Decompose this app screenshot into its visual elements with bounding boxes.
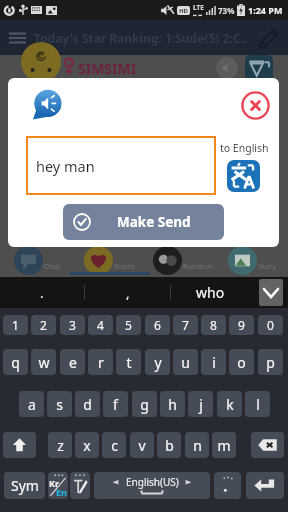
- staticText: a: [28, 395, 36, 414]
- staticText: .: [40, 284, 44, 302]
- button[interactable]: who: [180, 277, 240, 308]
- button[interactable]: b: [157, 432, 181, 458]
- button[interactable]: w: [31, 349, 56, 375]
- button[interactable]: Menu: [0, 20, 34, 55]
- button[interactable]: Chat: [14, 244, 61, 277]
- button[interactable]: 2: [31, 315, 56, 335]
- staticText: Kr: [49, 477, 59, 489]
- button[interactable]: 3: [60, 315, 85, 335]
- staticText: i: [212, 353, 216, 372]
- staticText: LTE: [193, 3, 204, 12]
- staticText: 0: [267, 317, 274, 333]
- button[interactable]: Make Send: [63, 204, 224, 240]
- button[interactable]: 6: [145, 315, 170, 335]
- staticText: 7: [182, 317, 189, 333]
- staticText: 3: [69, 317, 76, 333]
- staticText: HD: [179, 7, 188, 15]
- button[interactable]: c: [102, 432, 126, 458]
- button[interactable]: Translate: [227, 160, 260, 192]
- staticText: m: [217, 436, 231, 455]
- button[interactable]: Space: [94, 472, 210, 499]
- button[interactable]: n: [185, 432, 209, 458]
- button[interactable]: h: [160, 391, 185, 417]
- button[interactable]: Handwriting: [70, 472, 90, 499]
- button[interactable]: .: [28, 277, 56, 308]
- staticText: who: [196, 283, 225, 302]
- button[interactable]: ,: [114, 277, 142, 308]
- staticText: t: [126, 353, 132, 372]
- button[interactable]: More suggestions: [259, 279, 283, 306]
- staticText: k: [226, 395, 234, 414]
- staticText: En: [56, 486, 67, 498]
- button[interactable]: 8: [201, 315, 226, 335]
- staticText: j: [199, 395, 203, 414]
- staticText: Room: [114, 261, 135, 271]
- button[interactable]: Enter: [246, 472, 284, 499]
- button[interactable]: Backspace: [251, 432, 284, 458]
- button[interactable]: f: [103, 391, 128, 417]
- button[interactable]: u: [173, 349, 198, 375]
- button[interactable]: Sym: [4, 472, 45, 499]
- staticText: Story: [258, 261, 277, 271]
- staticText: h: [168, 395, 177, 414]
- button[interactable]: q: [3, 349, 28, 375]
- button[interactable]: p: [258, 349, 283, 375]
- staticText: w: [38, 353, 50, 372]
- staticText: f: [113, 395, 118, 414]
- staticText: g: [140, 395, 149, 414]
- button[interactable]: t: [116, 349, 141, 375]
- button[interactable]: Punctuation: [214, 472, 241, 499]
- staticText: q: [11, 353, 20, 372]
- button[interactable]: 7: [173, 315, 198, 335]
- button[interactable]: d: [75, 391, 100, 417]
- staticText: 73%: [218, 5, 235, 16]
- button[interactable]: Play sound: [26, 85, 62, 119]
- button[interactable]: s: [47, 391, 72, 417]
- button[interactable]: v: [130, 432, 154, 458]
- button[interactable]: y: [145, 349, 170, 375]
- button[interactable]: m: [212, 432, 236, 458]
- staticText: SIMSIMI: [78, 59, 137, 78]
- button[interactable]: 5: [116, 315, 141, 335]
- staticText: Random: [183, 261, 213, 271]
- staticText: c: [111, 436, 118, 455]
- button[interactable]: i: [201, 349, 226, 375]
- staticText: 6: [154, 317, 161, 333]
- button[interactable]: z: [48, 432, 72, 458]
- button[interactable]: k: [217, 391, 242, 417]
- button[interactable]: Room: [84, 244, 135, 277]
- staticText: English(US): [126, 475, 179, 489]
- button[interactable]: hey man: [28, 138, 214, 193]
- button[interactable]: r: [88, 349, 113, 375]
- button[interactable]: Shift: [3, 432, 36, 458]
- button[interactable]: Story: [228, 244, 277, 277]
- staticText: 1: [12, 317, 19, 333]
- staticText: Today's Star Ranking: 1:Sude(5) 2:C..: [34, 30, 248, 46]
- staticText: hey man: [36, 156, 95, 176]
- staticText: o: [237, 353, 246, 372]
- staticText: r: [98, 353, 104, 372]
- button[interactable]: a: [19, 391, 44, 417]
- staticText: Sym: [11, 476, 39, 495]
- button[interactable]: Compose: [254, 20, 284, 55]
- staticText: 8: [210, 317, 217, 333]
- staticText: s: [56, 395, 63, 414]
- staticText: d: [83, 395, 92, 414]
- button[interactable]: 1: [3, 315, 28, 335]
- button[interactable]: Close: [239, 89, 271, 121]
- button[interactable]: x: [75, 432, 99, 458]
- button[interactable]: 4: [88, 315, 113, 335]
- button[interactable]: o: [229, 349, 254, 375]
- button[interactable]: Change language: [48, 472, 68, 499]
- staticText: z: [57, 436, 64, 455]
- button[interactable]: l: [245, 391, 270, 417]
- button[interactable]: g: [132, 391, 157, 417]
- button[interactable]: j: [188, 391, 213, 417]
- staticText: 1:24 PM: [248, 4, 283, 16]
- button[interactable]: e: [60, 349, 85, 375]
- button[interactable]: 9: [229, 315, 254, 335]
- staticText: u: [181, 353, 190, 372]
- button[interactable]: 0: [258, 315, 283, 335]
- button[interactable]: Random: [153, 244, 213, 277]
- staticText: b: [165, 436, 174, 455]
